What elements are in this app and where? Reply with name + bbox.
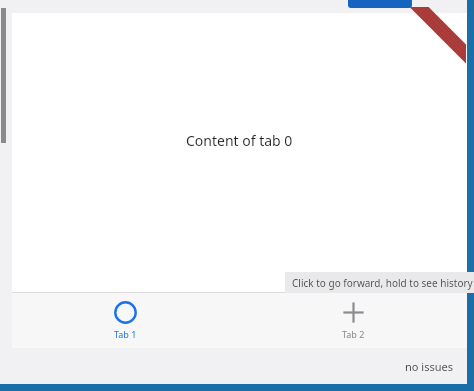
staticText: Content of tab 0 <box>186 131 293 150</box>
staticText: Tab 1 <box>114 328 137 340</box>
button[interactable]: Tab 2 <box>239 293 467 348</box>
staticText: no issues <box>405 359 453 374</box>
staticText: DEBUG <box>422 28 447 52</box>
button[interactable]: no issues <box>405 359 453 374</box>
button[interactable]: Tab 1 <box>12 293 239 348</box>
staticText: Click to go forward, hold to see history <box>292 276 473 290</box>
staticText: Tab 2 <box>342 328 365 340</box>
button[interactable]: Run <box>348 0 412 8</box>
